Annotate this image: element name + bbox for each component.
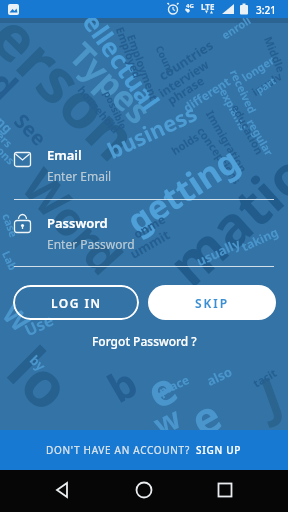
staticText: erson	[0, 18, 157, 178]
staticText: conceptions	[194, 124, 245, 187]
staticText: taking	[238, 223, 280, 254]
staticText: Immigration	[203, 107, 251, 175]
staticText: SKIP	[195, 295, 230, 311]
staticText: d	[0, 59, 29, 110]
staticText: received	[227, 67, 260, 116]
staticText: phrase	[164, 72, 207, 108]
staticText: Count	[153, 43, 178, 77]
staticText: 4G	[186, 2, 194, 10]
staticText: getting	[118, 136, 248, 244]
staticText: e	[135, 356, 188, 422]
staticText: Email	[47, 146, 82, 164]
staticText: countries	[155, 36, 217, 84]
staticText: involv	[249, 68, 285, 99]
staticText: tacit	[250, 364, 280, 390]
staticText: case	[0, 211, 22, 240]
staticText: holds	[168, 129, 202, 158]
staticText: ng	[0, 113, 17, 137]
staticText: also	[203, 362, 236, 390]
staticText: Types	[60, 32, 162, 134]
staticText: education	[228, 101, 268, 158]
staticText: explains	[217, 86, 251, 133]
button[interactable]: SKIP	[148, 285, 276, 320]
button[interactable]	[192, 470, 288, 512]
staticText: enroll	[218, 18, 253, 42]
staticText: by	[26, 351, 50, 375]
staticText: mation	[151, 110, 288, 301]
staticText: longer	[239, 52, 277, 85]
staticText: interview	[155, 56, 212, 100]
staticText: household	[75, 82, 123, 137]
button[interactable]	[96, 470, 192, 512]
staticText: 3:21	[256, 3, 276, 17]
staticText: e	[179, 384, 232, 430]
staticText: Use	[21, 309, 57, 341]
staticText: Forgot Password ?	[92, 333, 197, 349]
staticText: LOG IN	[51, 295, 102, 311]
staticText: DON'T HAVE AN ACCOUNT?	[46, 443, 191, 457]
staticText: See	[9, 108, 52, 151]
button[interactable]: Forgot Password ?	[0, 333, 288, 349]
staticText: onme	[130, 210, 169, 242]
staticText: w	[147, 396, 187, 430]
staticText: ons	[0, 143, 18, 168]
staticText: J	[250, 358, 288, 430]
button[interactable]: DON'T HAVE AN ACCOUNT?	[0, 430, 288, 470]
button[interactable]	[0, 470, 96, 512]
staticText: ellectual	[75, 18, 168, 117]
staticText: LTE	[201, 1, 215, 12]
staticText: possible	[100, 88, 130, 132]
staticText: SIGN UP	[196, 443, 242, 457]
staticText: Lab	[0, 248, 21, 273]
staticText: ers	[0, 128, 17, 151]
staticText: lo	[0, 328, 91, 428]
staticText: Middle	[261, 34, 288, 75]
staticText: business	[102, 97, 202, 165]
staticText: Word	[9, 155, 137, 288]
staticText: Employed	[113, 25, 145, 80]
staticText: b	[97, 354, 147, 414]
staticText: Password	[47, 214, 108, 232]
button[interactable]: LOG IN	[13, 285, 139, 320]
staticText: usually	[193, 234, 244, 270]
staticText: Employment	[124, 32, 162, 103]
staticText: place	[156, 371, 192, 399]
staticText: different	[180, 73, 233, 115]
staticText: W	[0, 296, 39, 339]
staticText: part	[253, 73, 279, 97]
staticText: Enter Email	[47, 168, 112, 184]
staticText: ummit	[126, 225, 173, 263]
staticText: regular	[244, 116, 277, 159]
staticText: Enter Password	[47, 236, 135, 252]
